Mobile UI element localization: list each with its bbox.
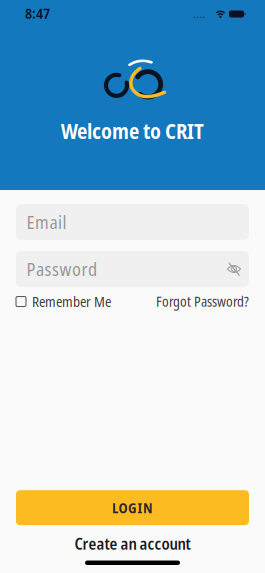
staticText: Forgot Password?: [156, 292, 249, 311]
button[interactable]: Show password: [227, 262, 241, 276]
button[interactable]: Forgot Password?: [156, 292, 249, 311]
staticText: 8:47: [25, 3, 50, 23]
staticText: Password: [26, 257, 97, 281]
button[interactable]: Create an account: [74, 533, 190, 554]
staticText: LOGIN: [112, 498, 153, 517]
button[interactable]: Remember Me: [16, 292, 111, 311]
staticText: Remember Me: [32, 292, 111, 311]
staticText: Welcome to CRIT: [61, 117, 204, 145]
button[interactable]: LOGIN: [16, 490, 249, 525]
staticText: Email: [26, 210, 66, 234]
staticText: Create an account: [74, 533, 190, 554]
